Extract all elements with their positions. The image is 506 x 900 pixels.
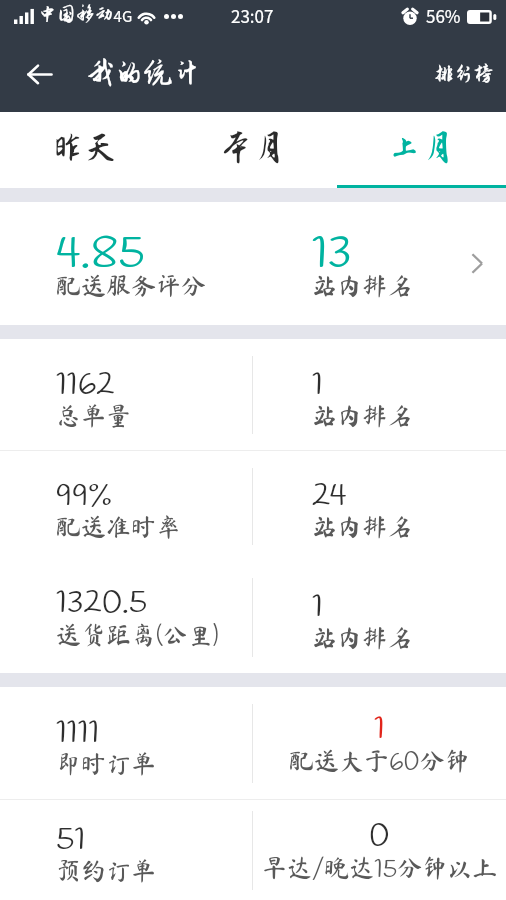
button[interactable]: 4.85 <box>0 202 506 325</box>
button[interactable]: 1162 <box>0 339 506 450</box>
staticText: 1111 <box>56 712 100 755</box>
button[interactable]: 51 <box>0 800 506 900</box>
staticText: 99% <box>56 475 112 518</box>
other: More <box>471 253 483 274</box>
button[interactable]: 1111 <box>0 687 506 799</box>
staticText: 预约订单 <box>56 858 157 883</box>
staticText: 配送大于60分钟 <box>289 747 470 780</box>
button[interactable]: 昨天 <box>0 112 168 188</box>
staticText: 上月 <box>388 129 455 166</box>
button[interactable]: 排行榜 <box>422 47 506 101</box>
staticText: 送货距离(公里) <box>56 621 219 654</box>
staticText: 中国移动4G <box>38 4 133 27</box>
staticText: 昨天 <box>51 129 118 166</box>
staticText: 我的统计 <box>86 57 202 89</box>
staticText: 早达/晚达15分钟以上 <box>262 854 498 887</box>
button[interactable]: 上月 <box>337 112 506 188</box>
staticText: 1 <box>312 586 323 629</box>
staticText: 4.85 <box>56 224 145 285</box>
staticText: 站内排名 <box>312 403 413 428</box>
staticText: 站内排名 <box>312 514 413 539</box>
staticText: 0 <box>369 815 390 858</box>
staticText: 总单量 <box>56 403 132 428</box>
staticText: 23:07 <box>231 3 274 28</box>
staticText: 本月 <box>219 129 286 166</box>
staticText: 51 <box>56 819 86 862</box>
staticText: 13 <box>312 224 352 285</box>
staticText: 配送服务评分 <box>56 273 207 298</box>
button[interactable]: 1320.5 <box>0 561 506 673</box>
button[interactable]: 99% <box>0 451 506 561</box>
button[interactable]: Back <box>0 36 64 112</box>
staticText: 24 <box>312 475 347 518</box>
button[interactable]: 本月 <box>168 112 337 188</box>
staticText: 56% <box>426 3 461 28</box>
staticText: 1162 <box>56 364 115 407</box>
staticText: 排行榜 <box>434 63 494 85</box>
staticText: 站内排名 <box>312 273 413 298</box>
staticText: 1 <box>374 708 385 751</box>
staticText: 配送准时率 <box>56 514 182 539</box>
staticText: 站内排名 <box>312 625 413 650</box>
staticText: 1 <box>312 364 323 407</box>
staticText: 即时订单 <box>56 751 157 776</box>
staticText: 1320.5 <box>56 582 148 625</box>
